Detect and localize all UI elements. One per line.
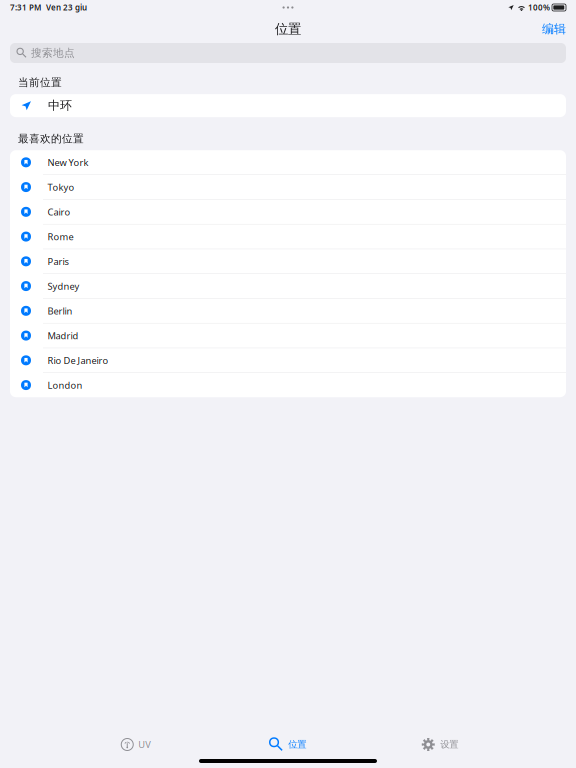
staticText: Cairo: [47, 206, 70, 218]
staticText: Ven 23 giu: [46, 2, 87, 13]
staticText: London: [47, 379, 82, 391]
button[interactable]: Madrid: [10, 323, 566, 348]
staticText: Rome: [47, 230, 73, 243]
staticText: 位置: [288, 739, 306, 750]
staticText: 搜索地点: [31, 46, 75, 59]
staticText: 位置: [275, 21, 301, 37]
staticText: Paris: [47, 255, 68, 267]
staticText: Tokyo: [47, 181, 74, 193]
button[interactable]: Rio De Janeiro: [10, 348, 566, 372]
staticText: UV: [138, 738, 151, 751]
staticText: 编辑: [542, 22, 566, 36]
button[interactable]: UV: [60, 730, 212, 758]
button[interactable]: 中环: [0, 94, 576, 117]
button[interactable]: 搜索地点: [0, 43, 576, 63]
staticText: 中环: [48, 98, 72, 113]
button[interactable]: Tokyo: [10, 175, 566, 199]
button[interactable]: Berlin: [10, 299, 566, 323]
staticText: 100%: [528, 2, 550, 13]
button[interactable]: Paris: [10, 249, 566, 273]
button[interactable]: Cairo: [10, 200, 566, 224]
button[interactable]: Rome: [10, 224, 566, 249]
staticText: Berlin: [47, 305, 72, 317]
staticText: 7:31 PM: [10, 2, 41, 13]
button[interactable]: Sydney: [10, 274, 566, 298]
staticText: New York: [47, 156, 88, 168]
button[interactable]: 编辑: [536, 18, 576, 40]
button[interactable]: New York: [10, 150, 566, 174]
staticText: Sydney: [47, 280, 79, 292]
button[interactable]: London: [10, 373, 566, 397]
staticText: 设置: [440, 739, 458, 750]
button[interactable]: 位置: [212, 730, 364, 758]
staticText: Madrid: [47, 329, 78, 342]
staticText: Rio De Janeiro: [47, 354, 108, 366]
staticText: 最喜欢的位置: [18, 132, 84, 145]
staticText: 当前位置: [18, 76, 62, 89]
button[interactable]: 设置: [364, 730, 516, 758]
